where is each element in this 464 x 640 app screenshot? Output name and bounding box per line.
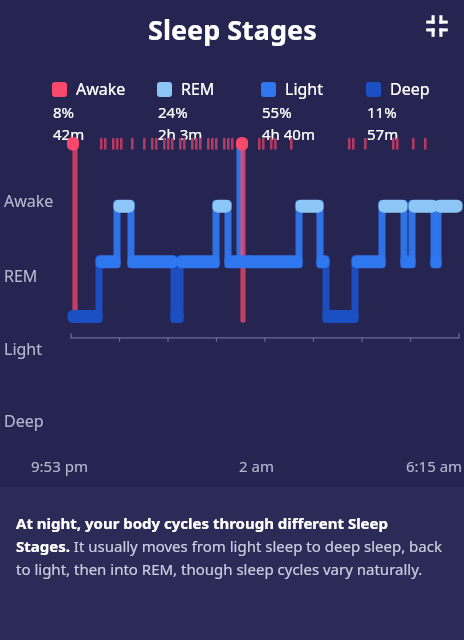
- staticText: Sleep Stages: [148, 11, 317, 48]
- staticText: 24%: [158, 102, 188, 122]
- staticText: Light: [285, 78, 324, 100]
- button[interactable]: REM: [157, 78, 261, 144]
- staticText: Awake: [4, 190, 54, 212]
- staticText: 57m: [367, 124, 399, 144]
- staticText: REM: [4, 265, 38, 287]
- button[interactable]: Awake: [52, 78, 157, 144]
- staticText: Deep: [4, 410, 44, 432]
- staticText: 6:15 am: [406, 456, 463, 476]
- staticText: Awake: [76, 78, 126, 100]
- staticText: 42m: [53, 124, 85, 144]
- staticText: 4h 40m: [262, 124, 315, 144]
- staticText: 8%: [53, 102, 75, 122]
- staticText: 11%: [367, 102, 397, 122]
- staticText: 2h 3m: [158, 124, 203, 144]
- staticText: Light: [4, 338, 43, 360]
- staticText: Deep: [390, 78, 430, 100]
- button[interactable]: Deep: [366, 78, 446, 144]
- staticText: REM: [181, 78, 215, 100]
- staticText: 9:53 pm: [31, 456, 88, 476]
- staticText: At night, your body cycles through diffe…: [16, 513, 442, 579]
- button[interactable]: Light: [261, 78, 366, 144]
- staticText: 2 am: [239, 456, 274, 476]
- button[interactable]: Collapse: [423, 12, 451, 40]
- staticText: 55%: [262, 102, 292, 122]
